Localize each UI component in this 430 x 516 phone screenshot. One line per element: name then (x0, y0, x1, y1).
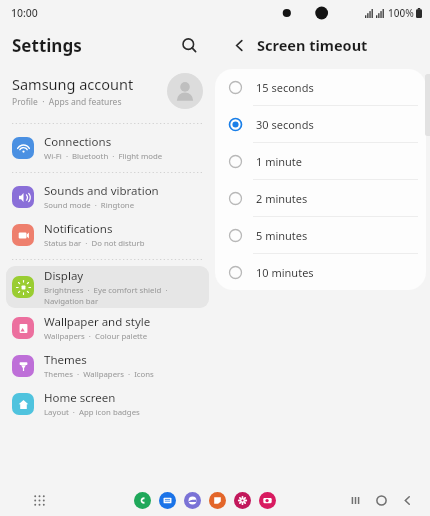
staticText: Layout · App icon badges (44, 407, 140, 418)
button[interactable]: Galaxy Store (234, 492, 251, 509)
button[interactable]: Notes (209, 492, 226, 509)
button[interactable]: Search (175, 31, 203, 59)
staticText: 30 seconds (256, 117, 314, 132)
staticText: Samsung account (12, 74, 134, 94)
button[interactable]: Messages (159, 492, 176, 509)
button[interactable]: Recents (342, 487, 368, 513)
button[interactable]: Home (368, 487, 394, 513)
staticText: 5 minutes (256, 228, 308, 243)
button[interactable]: Display (6, 266, 209, 308)
staticText: Sound mode · Ringtone (44, 200, 135, 211)
staticText: Screen timeout (257, 35, 368, 55)
button[interactable]: 1 minute (215, 143, 426, 179)
staticText: 10:00 (11, 6, 38, 20)
staticText: 15 seconds (256, 80, 314, 95)
button[interactable]: Wallpaper and style (6, 310, 209, 346)
button[interactable]: Back (227, 33, 251, 57)
staticText: 10 minutes (256, 265, 314, 280)
staticText: Connections (44, 134, 112, 150)
staticText: Themes · Wallpapers · Icons (44, 369, 154, 380)
button[interactable]: 5 minutes (215, 217, 426, 253)
staticText: Navigation bar (44, 296, 99, 307)
staticText: Settings (12, 34, 82, 57)
staticText: 100% (388, 6, 414, 20)
button[interactable]: Themes (6, 348, 209, 384)
staticText: Brightness · Eye comfort shield · (44, 285, 168, 296)
staticText: Wi-Fi · Bluetooth · Flight mode (44, 151, 163, 162)
button[interactable]: Sounds and vibration (6, 179, 209, 215)
button[interactable]: Internet (184, 492, 201, 509)
button[interactable]: 2 minutes (215, 180, 426, 216)
button[interactable]: 15 seconds (215, 69, 426, 105)
staticText: Status bar · Do not disturb (44, 238, 145, 249)
staticText: Profile · Apps and features (12, 96, 122, 108)
button[interactable]: Phone (134, 492, 151, 509)
button[interactable]: Connections (6, 130, 209, 166)
staticText: Themes (44, 352, 87, 368)
staticText: Wallpapers · Colour palette (44, 331, 148, 342)
button[interactable]: Samsung account (0, 64, 215, 118)
staticText: Sounds and vibration (44, 183, 159, 199)
staticText: 1 minute (256, 154, 303, 169)
button[interactable]: All apps (28, 489, 50, 511)
staticText: Notifications (44, 221, 113, 237)
button[interactable]: Camera (259, 492, 276, 509)
button[interactable]: 30 seconds (215, 106, 426, 142)
button[interactable]: Back (394, 487, 420, 513)
staticText: 2 minutes (256, 191, 308, 206)
button[interactable]: Notifications (6, 217, 209, 253)
staticText: Display (44, 268, 84, 284)
staticText: Wallpaper and style (44, 314, 151, 330)
button[interactable]: 10 minutes (215, 254, 426, 290)
button[interactable]: Home screen (6, 386, 209, 422)
staticText: Home screen (44, 390, 116, 406)
